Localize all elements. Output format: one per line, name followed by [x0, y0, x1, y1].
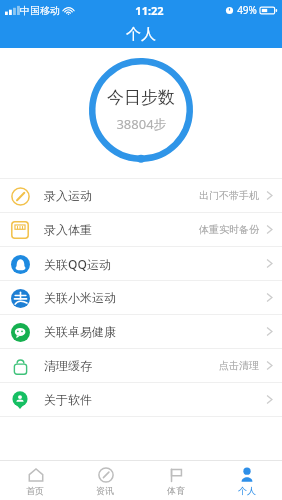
staticText: 今日步数	[107, 87, 175, 108]
button[interactable]: 关联QQ运动	[0, 247, 282, 280]
staticText: 首页	[26, 485, 44, 496]
staticText: 关联QQ运动	[44, 256, 111, 272]
staticText: 49%	[237, 3, 257, 17]
button[interactable]: 清理缓存	[0, 349, 282, 382]
staticText: 关联小米运动	[44, 290, 116, 305]
staticText: 录入体重	[44, 222, 92, 237]
staticText: 38804步	[116, 115, 167, 133]
staticText: 体重实时备份	[199, 223, 259, 236]
staticText: 体育	[167, 485, 185, 496]
staticText: 点击清理	[219, 359, 259, 372]
staticText: 中国移动	[20, 4, 60, 17]
staticText: 清理缓存	[44, 358, 92, 373]
staticText: 个人	[238, 485, 256, 496]
staticText: 录入运动	[44, 188, 92, 203]
button[interactable]: 关联小米运动	[0, 281, 282, 314]
button[interactable]: 体育	[140, 461, 211, 500]
staticText: 资讯	[96, 485, 114, 496]
button[interactable]: 关于软件	[0, 383, 282, 416]
button[interactable]: 资讯	[70, 461, 140, 500]
staticText: 出门不带手机	[199, 189, 259, 202]
staticText: 个人	[126, 25, 156, 44]
button[interactable]: 首页	[0, 461, 70, 500]
staticText: 关于软件	[44, 392, 92, 407]
button[interactable]: 录入运动	[0, 179, 282, 212]
staticText: 11:22	[135, 3, 164, 18]
staticText: 关联卓易健康	[44, 324, 116, 339]
button[interactable]: 关联卓易健康	[0, 315, 282, 348]
button[interactable]: 录入体重	[0, 213, 282, 246]
button[interactable]: 个人	[211, 461, 282, 500]
